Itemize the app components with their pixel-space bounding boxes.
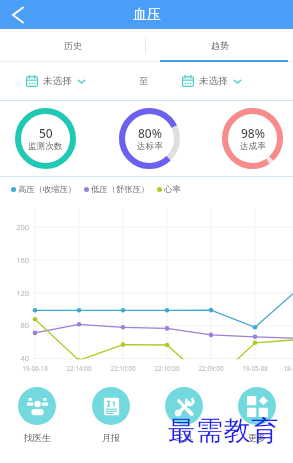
staticText: 50 [39, 125, 53, 141]
staticText: 98% [241, 125, 265, 141]
button[interactable]: 未选择 [26, 75, 86, 87]
staticText: 200 [5, 222, 29, 232]
staticText: 达成率 [240, 141, 266, 152]
staticText: 更多 [248, 432, 266, 443]
button[interactable]: 工具 [147, 378, 220, 463]
button[interactable]: 趋势 [146, 29, 293, 62]
staticText: 找医生 [24, 432, 51, 443]
staticText: 未选择 [199, 75, 228, 87]
staticText: 监测次数 [28, 141, 63, 152]
staticText: 22:14:00 [59, 364, 99, 373]
staticText: 80% [138, 125, 162, 141]
button[interactable]: Back [0, 0, 36, 29]
staticText: 高压（收缩压） [18, 184, 77, 194]
staticText: 低压（舒张压） [91, 184, 150, 194]
staticText: 血压 [133, 6, 161, 24]
staticText: 19-05-08 [235, 364, 275, 373]
staticText: 22:10:00 [147, 364, 187, 373]
staticText: 历史 [64, 40, 82, 51]
staticText: 心率 [164, 184, 181, 194]
staticText: 40 [5, 353, 29, 363]
staticText: 达标率 [137, 141, 163, 152]
button[interactable]: 更多 [220, 378, 293, 463]
staticText: 22:10:00 [103, 364, 143, 373]
button[interactable]: 找医生 [0, 378, 74, 463]
staticText: 160 [5, 255, 29, 265]
button[interactable]: 历史 [0, 29, 146, 62]
staticText: 至 [139, 75, 149, 87]
staticText: 120 [5, 288, 29, 298]
button[interactable]: 月报 [74, 378, 147, 463]
staticText: 最需教育 [168, 414, 280, 448]
button[interactable]: 未选择 [182, 75, 242, 87]
staticText: 月报 [102, 432, 120, 443]
staticText: 22:09:00 [191, 364, 231, 373]
staticText: 19-06-18 [15, 364, 55, 373]
staticText: 未选择 [43, 75, 72, 87]
staticText: 趋势 [211, 40, 229, 51]
staticText: 18- [268, 364, 293, 373]
staticText: 80 [5, 320, 29, 330]
staticText: 工具 [175, 432, 193, 443]
